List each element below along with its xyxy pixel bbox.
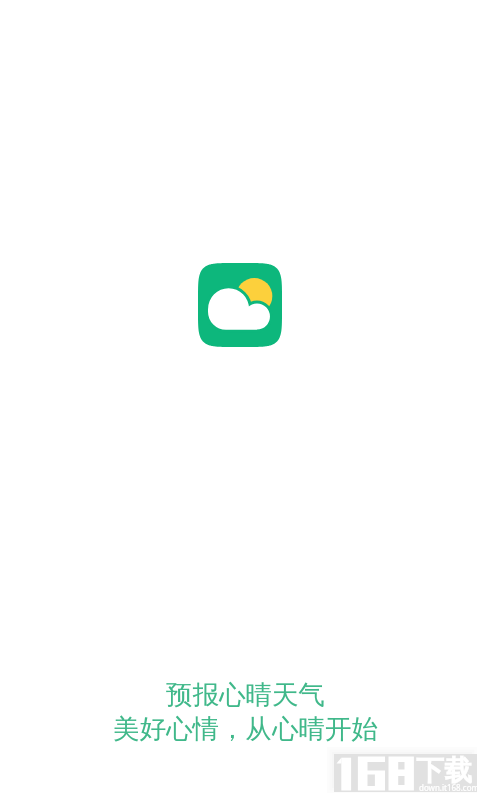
staticText: 下载 xyxy=(416,753,472,788)
staticText: down.it168.com xyxy=(419,782,479,793)
button[interactable]: 心晴天气 app icon xyxy=(198,263,282,347)
staticText: 美好心情，从心晴开始 xyxy=(113,712,378,745)
staticText: 预报心晴天气 xyxy=(166,678,325,711)
